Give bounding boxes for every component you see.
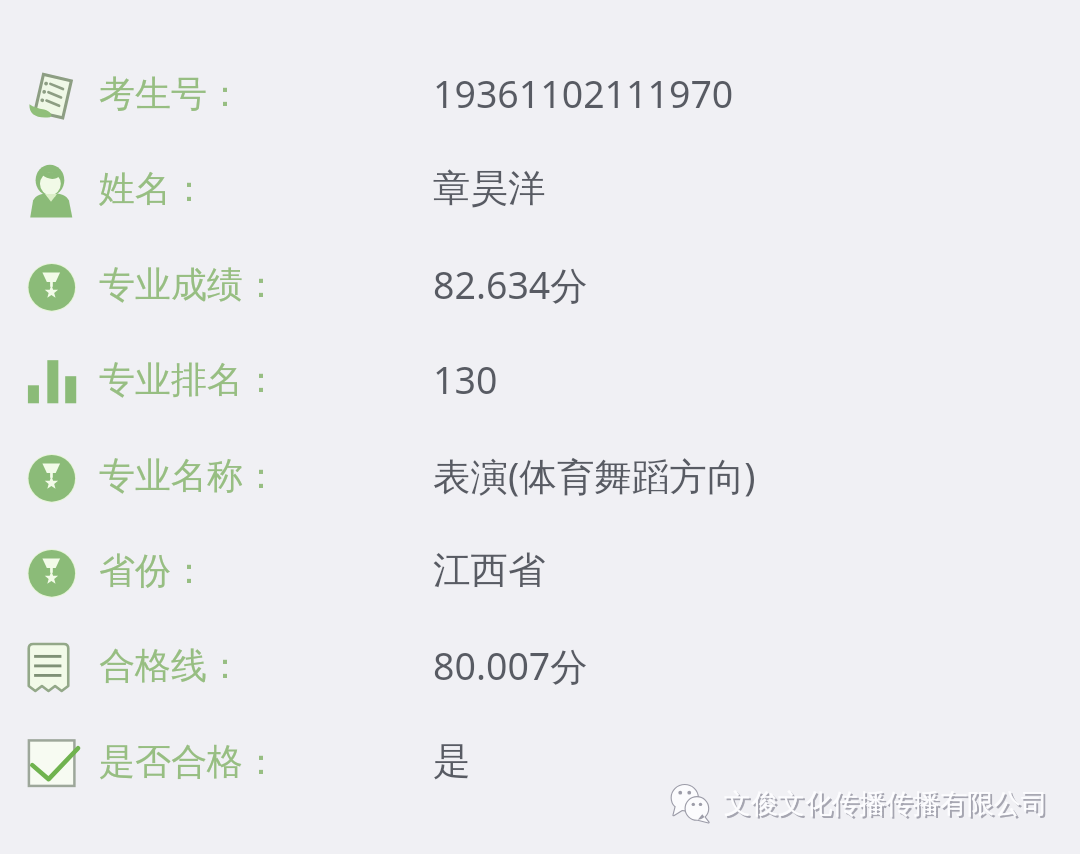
staticText: 章昊洋 — [433, 165, 546, 212]
other: Qualified — [25, 736, 77, 788]
button[interactable]: Pass line — [0, 618, 1080, 713]
staticText: 82.634分 — [433, 259, 588, 310]
staticText: 专业排名： — [99, 357, 279, 402]
staticText: 是否合格： — [99, 739, 279, 784]
staticText: 省份： — [99, 548, 207, 593]
staticText: 文俊文化传播传播有限公司 — [724, 787, 1048, 821]
staticText: 合格线： — [99, 643, 243, 688]
button[interactable]: Rank — [0, 332, 1080, 427]
other: Name — [25, 163, 77, 215]
staticText: 专业名称： — [99, 453, 279, 498]
staticText: 19361102111970 — [433, 68, 734, 119]
button[interactable]: Exam number — [0, 46, 1080, 141]
staticText: 考生号： — [99, 71, 243, 116]
button[interactable]: Name — [0, 141, 1080, 236]
other: Pass line — [25, 640, 77, 692]
button[interactable]: Medal — [0, 523, 1080, 618]
other: Medal — [25, 259, 77, 311]
staticText: 专业成绩： — [99, 262, 279, 307]
staticText: 80.007分 — [433, 640, 588, 691]
button[interactable]: Medal — [0, 428, 1080, 523]
button[interactable]: Qualified — [0, 714, 1080, 809]
button[interactable]: Medal — [0, 237, 1080, 332]
staticText: 姓名： — [99, 166, 207, 211]
staticText: 130 — [433, 354, 498, 405]
other: Rank — [25, 354, 77, 406]
staticText: 是 — [433, 738, 471, 785]
button[interactable]: 文俊文化传播传播有限公司 — [669, 781, 1048, 826]
other: WeChat — [669, 781, 714, 826]
staticText: 表演(体育舞蹈方向) — [433, 450, 756, 501]
other: Exam number — [25, 68, 77, 120]
staticText: 江西省 — [433, 547, 546, 594]
staticText: 文俊文化传播传播有限公司 — [726, 789, 1050, 823]
other: Medal — [25, 545, 77, 597]
other: Medal — [25, 450, 77, 502]
